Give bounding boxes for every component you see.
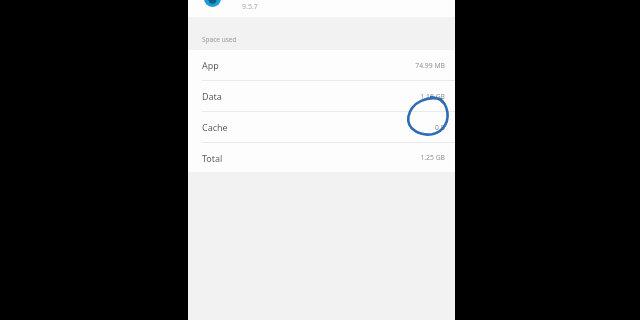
- button[interactable]: App: [188, 50, 455, 80]
- other: App icon: [202, 0, 223, 7]
- staticText: 1.18 GB: [420, 92, 445, 101]
- button[interactable]: Cache: [188, 112, 455, 142]
- staticText: Cache: [202, 121, 228, 133]
- staticText: 0 B: [434, 123, 445, 132]
- staticText: 1.25 GB: [420, 153, 445, 162]
- staticText: App: [202, 59, 219, 71]
- staticText: 9.5.7: [242, 2, 258, 12]
- staticText: Total: [202, 152, 223, 164]
- button[interactable]: Total: [188, 143, 455, 172]
- button[interactable]: Data: [188, 81, 455, 111]
- staticText: Space used: [202, 35, 237, 44]
- staticText: 74.99 MB: [415, 61, 445, 70]
- staticText: Data: [202, 90, 222, 102]
